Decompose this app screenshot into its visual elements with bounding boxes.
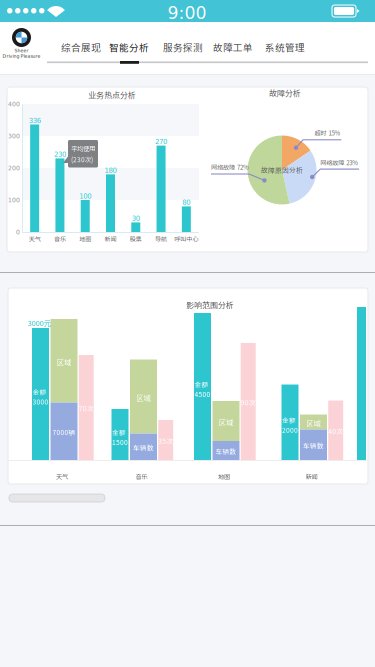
staticText: 故障原因分析 <box>261 165 303 175</box>
staticText: 300 <box>8 132 20 140</box>
staticText: 30 <box>132 214 140 222</box>
staticText: (230次) <box>71 155 93 164</box>
staticText: 80 <box>182 198 190 206</box>
staticText: 地图 <box>79 234 91 243</box>
staticText: 90次 <box>241 397 256 407</box>
staticText: 天气 <box>29 234 41 243</box>
staticText: 200 <box>8 164 20 172</box>
staticText: 金额 2000 <box>282 415 298 434</box>
staticText: Driving Pleasure <box>2 53 40 59</box>
staticText: 地图 <box>218 472 230 481</box>
staticText: 综合展现 <box>61 40 101 54</box>
staticText: 天气 <box>56 472 68 481</box>
staticText: 车辆数 <box>303 441 324 450</box>
staticText: 网络故障 72% <box>211 163 249 171</box>
staticText: 新闻 <box>104 234 116 243</box>
staticText: 35次 <box>158 436 173 446</box>
staticText: 100 <box>79 192 91 200</box>
staticText: Sheer <box>14 48 28 53</box>
staticText: 故障工单 <box>213 40 253 54</box>
staticText: 平均使用 <box>71 143 95 153</box>
staticText: 3000元 <box>28 317 51 328</box>
button[interactable]: 故障工单 <box>210 35 256 59</box>
staticText: 车辆数 <box>133 443 154 452</box>
staticText: 70次 <box>79 403 94 413</box>
staticText: 9:00 <box>167 3 206 23</box>
staticText: 230 <box>54 150 66 158</box>
staticText: 系统管理 <box>265 40 305 54</box>
staticText: 400 <box>8 100 20 108</box>
button[interactable]: 智能分析 <box>106 35 152 59</box>
staticText: 区域 <box>136 392 150 403</box>
staticText: 导航 <box>155 234 167 243</box>
button[interactable]: 服务探测 <box>160 35 206 59</box>
staticText: 音乐 <box>54 234 66 243</box>
staticText: 故障分析 <box>269 87 301 99</box>
staticText: 0 <box>16 228 20 236</box>
staticText: 网络故障 23% <box>320 158 358 167</box>
staticText: 180 <box>104 166 116 174</box>
staticText: 业务热点分析 <box>88 89 136 101</box>
staticText: 区域 <box>306 418 320 428</box>
staticText: 100 <box>8 196 20 204</box>
staticText: 超时 15% <box>314 128 340 137</box>
staticText: 新闻 <box>305 472 317 481</box>
staticText: 股票 <box>130 234 142 243</box>
staticText: 270 <box>155 138 167 146</box>
staticText: 影响范围分析 <box>186 299 234 311</box>
staticText: 区域 <box>57 357 71 367</box>
staticText: 智能分析 <box>109 40 149 54</box>
staticText: 336 <box>29 116 41 125</box>
staticText: 服务探测 <box>163 40 203 54</box>
staticText: 金额 3000 <box>32 387 48 406</box>
staticText: 金额 4500 <box>194 379 210 399</box>
button[interactable]: 系统管理 <box>262 35 308 59</box>
staticText: 40次 <box>328 426 343 436</box>
staticText: 车辆数 <box>215 446 236 456</box>
button[interactable]: 综合展现 <box>58 35 104 59</box>
staticText: 金额 1500 <box>112 427 128 447</box>
staticText: 呼叫中心 <box>174 234 198 243</box>
staticText: 7000辆 <box>52 427 75 437</box>
staticText: 音乐 <box>135 472 147 481</box>
staticText: 区域 <box>219 417 233 427</box>
